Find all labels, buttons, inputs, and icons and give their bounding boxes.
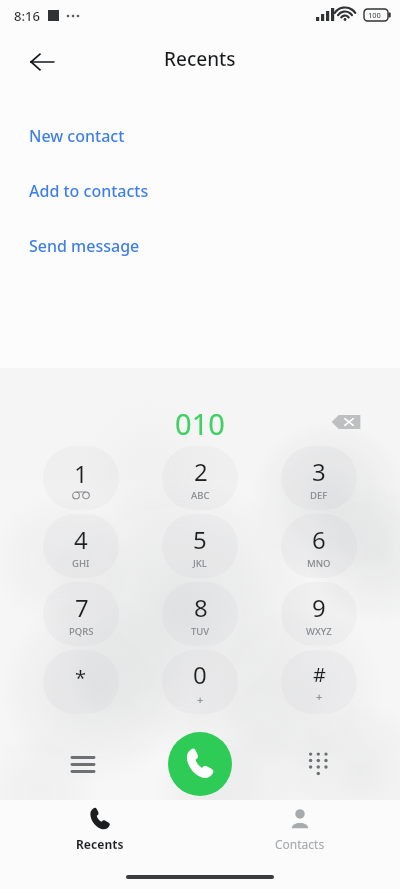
button[interactable]: Add to contacts xyxy=(0,163,400,218)
button[interactable]: 0 xyxy=(162,650,238,714)
staticText: 010 xyxy=(175,404,225,443)
button[interactable]: Call log options xyxy=(59,740,107,788)
button[interactable]: 5 xyxy=(162,514,238,578)
button[interactable]: 7 xyxy=(43,582,119,646)
staticText: Contacts xyxy=(275,836,325,852)
button[interactable]: 9 xyxy=(281,582,357,646)
staticText: 4 xyxy=(74,523,88,556)
button[interactable]: Backspace xyxy=(324,400,368,444)
staticText: Recents xyxy=(164,46,236,72)
staticText: 3 xyxy=(312,455,326,488)
staticText: DEF xyxy=(310,489,328,502)
staticText: ABC xyxy=(191,489,210,502)
staticText: 0 xyxy=(193,658,207,691)
staticText: 5 xyxy=(193,523,207,556)
staticText: 2 xyxy=(194,455,208,488)
staticText: # xyxy=(313,661,326,688)
staticText: Send message xyxy=(29,235,140,257)
button[interactable]: 4 xyxy=(43,514,119,578)
button[interactable]: Send message xyxy=(0,218,400,273)
staticText: 8:16 xyxy=(14,7,40,25)
staticText: 7 xyxy=(75,591,89,624)
button[interactable]: 3 xyxy=(281,446,357,510)
staticText: 1 xyxy=(74,457,88,490)
staticText: GHI xyxy=(72,557,90,570)
button[interactable]: 1 xyxy=(43,446,119,510)
staticText: PQRS xyxy=(69,625,94,638)
button[interactable]: 8 xyxy=(162,582,238,646)
staticText: New contact xyxy=(29,125,125,147)
staticText: WXYZ xyxy=(306,625,332,638)
button[interactable]: New contact xyxy=(0,108,400,163)
staticText: * xyxy=(75,664,87,691)
staticText: MNO xyxy=(307,557,331,570)
button[interactable]: Back xyxy=(18,38,66,86)
staticText: JKL xyxy=(193,557,207,570)
button[interactable]: * xyxy=(43,650,119,714)
button[interactable]: Recents xyxy=(0,800,200,867)
staticText: 6 xyxy=(312,523,326,556)
staticText: 9 xyxy=(312,591,326,624)
staticText: Recents xyxy=(76,836,124,852)
button[interactable]: Keypad xyxy=(293,738,341,786)
button[interactable]: # xyxy=(281,650,357,714)
button[interactable]: Call xyxy=(168,732,232,796)
button[interactable]: 6 xyxy=(281,514,357,578)
staticText: 100 xyxy=(368,10,381,20)
staticText: TUV xyxy=(191,625,210,638)
button[interactable]: 2 xyxy=(162,446,238,510)
button[interactable]: Contacts xyxy=(200,800,400,867)
staticText: Add to contacts xyxy=(29,180,149,202)
staticText: 8 xyxy=(194,591,208,624)
staticText: + xyxy=(197,692,204,707)
staticText: + xyxy=(316,689,323,704)
